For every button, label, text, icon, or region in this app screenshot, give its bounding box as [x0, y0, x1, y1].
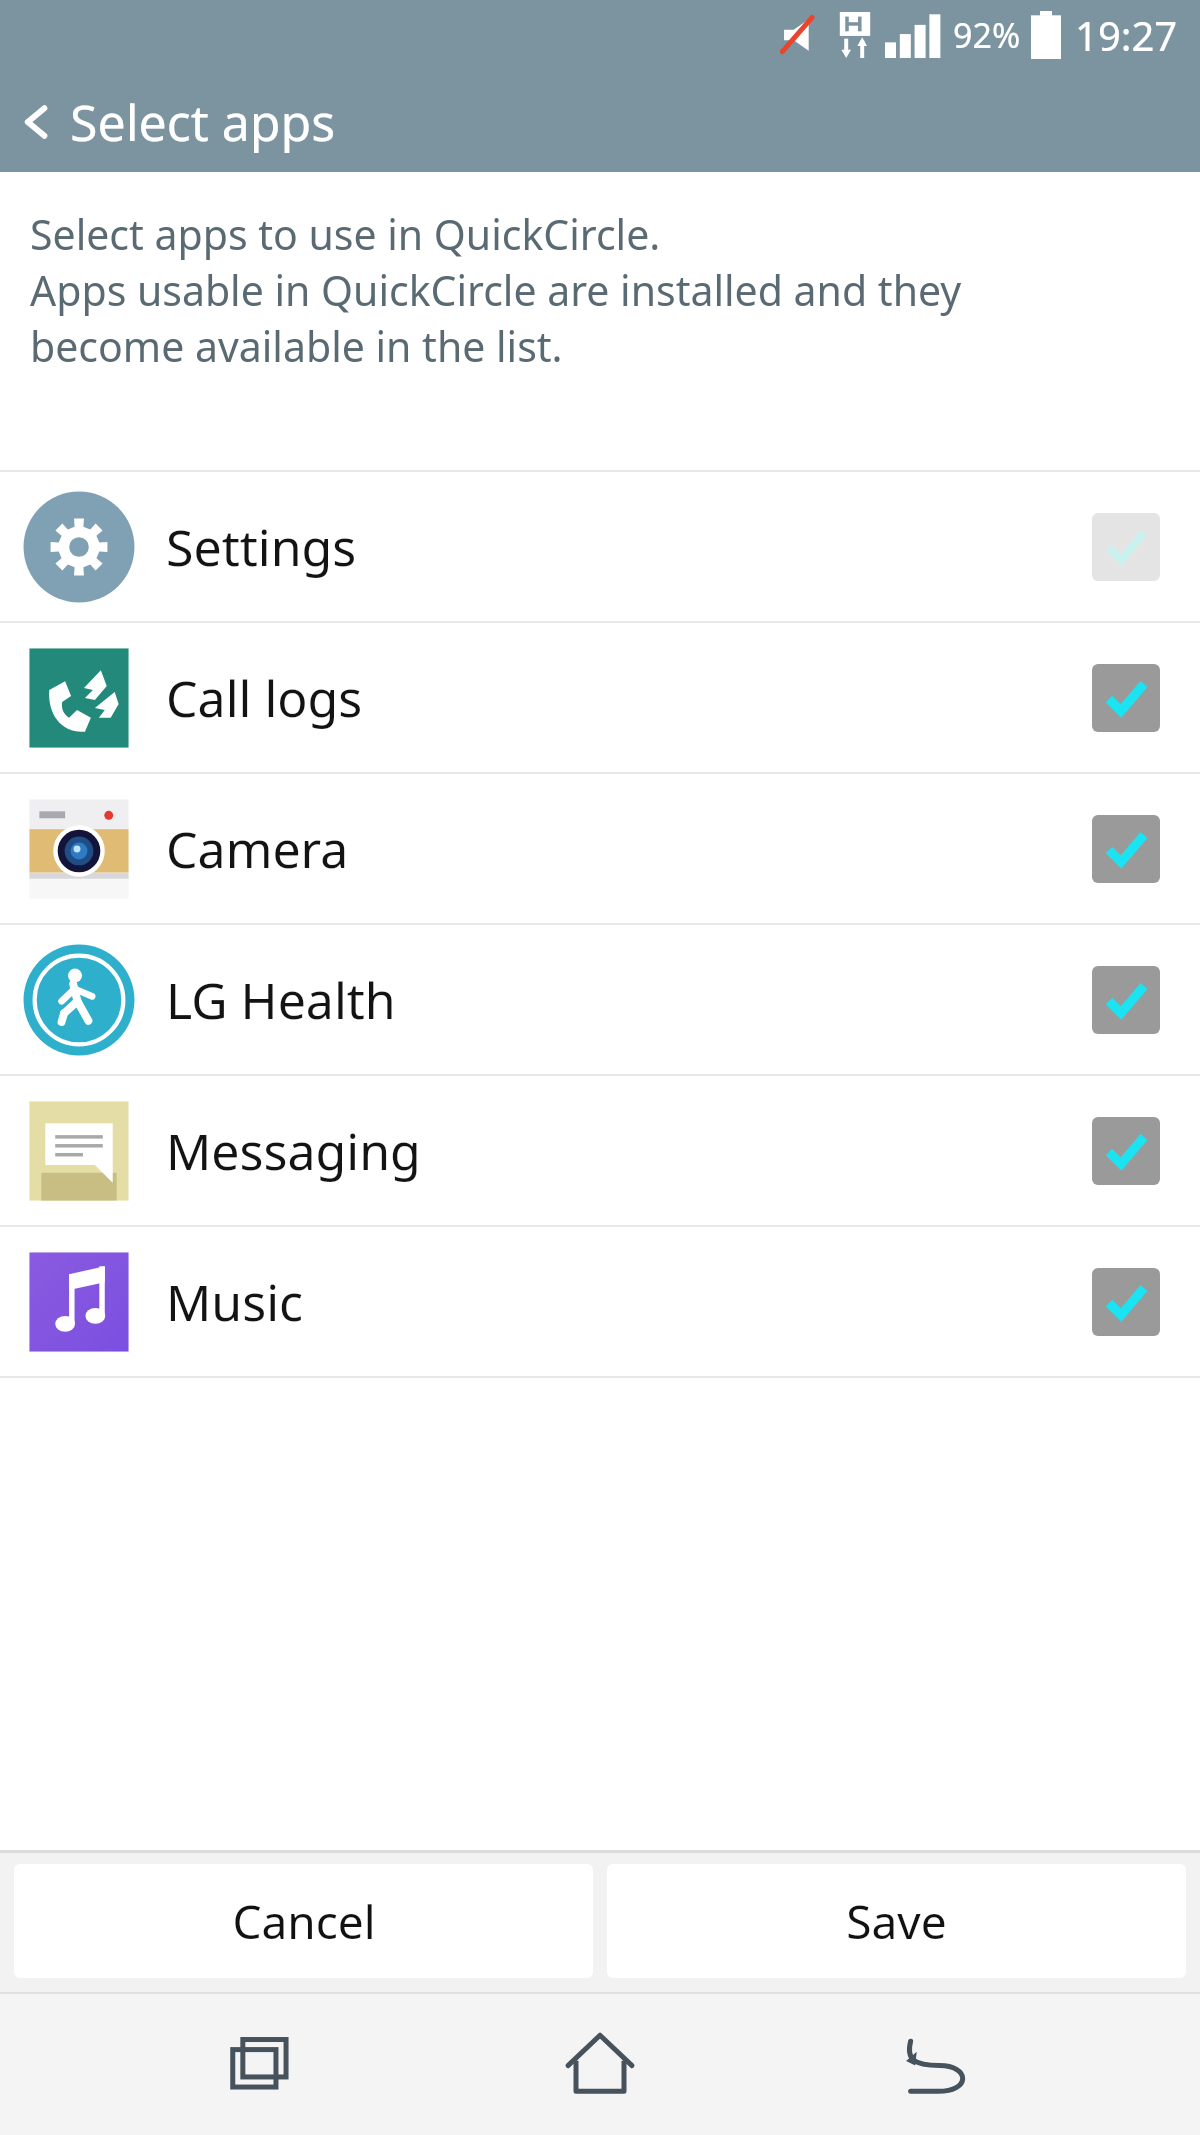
staticText: Save [846, 1890, 947, 1953]
staticText: Camera [166, 815, 349, 883]
button[interactable]: Camera [0, 774, 1200, 923]
button[interactable]: Back [0, 72, 1200, 172]
button[interactable]: Call logs [0, 623, 1200, 772]
staticText: Settings [166, 513, 357, 581]
button[interactable]: Recent apps [188, 2004, 338, 2124]
staticText: Messaging [166, 1117, 421, 1185]
button[interactable]: Messaging [0, 1076, 1200, 1225]
button[interactable]: Settings [0, 472, 1200, 621]
staticText: 19:27 [1075, 8, 1178, 62]
button[interactable]: LG Health [0, 925, 1200, 1074]
button[interactable]: Checkbox [1092, 664, 1160, 732]
other: Back [14, 99, 60, 145]
button[interactable]: Checkbox [1092, 966, 1160, 1034]
staticText: Select apps [70, 88, 336, 156]
staticText: 92% [953, 12, 1021, 58]
other: Muted [777, 13, 821, 57]
button[interactable]: Cancel [14, 1864, 593, 1978]
button[interactable]: Save [607, 1864, 1186, 1978]
staticText: LG Health [166, 966, 396, 1034]
button[interactable]: Music [0, 1227, 1200, 1376]
button[interactable]: Checkbox [1092, 1268, 1160, 1336]
staticText: Select apps to use in QuickCircle. Apps … [30, 206, 962, 374]
button[interactable]: Home [525, 2004, 675, 2124]
staticText: Music [166, 1268, 304, 1336]
button[interactable]: Checkbox [1092, 513, 1160, 581]
button[interactable]: Checkbox [1092, 1117, 1160, 1185]
button[interactable]: Back [863, 2004, 1013, 2124]
button[interactable]: Checkbox [1092, 815, 1160, 883]
staticText: Call logs [166, 664, 363, 732]
staticText: Cancel [232, 1890, 376, 1953]
